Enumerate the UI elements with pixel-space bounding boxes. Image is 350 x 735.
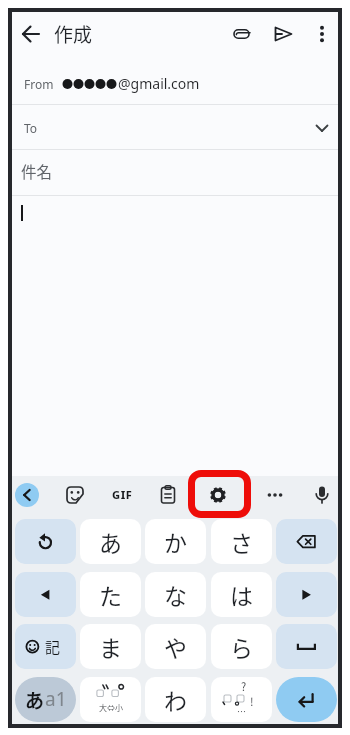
staticText: @gmail.com <box>118 74 200 93</box>
button[interactable]: た <box>80 572 141 617</box>
button[interactable] <box>263 14 303 54</box>
button[interactable]: わ <box>145 677 206 722</box>
button[interactable]: 大⇔小 <box>80 677 141 722</box>
staticText: ? <box>241 678 247 694</box>
button[interactable] <box>302 14 342 54</box>
staticText: 大⇔小 <box>99 702 123 714</box>
staticText: GIF <box>112 487 133 502</box>
button[interactable]: さ <box>211 519 272 564</box>
staticText: わ <box>164 683 187 716</box>
button[interactable]: 記 <box>15 624 76 669</box>
staticText: あ <box>25 686 45 714</box>
button[interactable] <box>11 58 339 104</box>
button[interactable]: ま <box>80 624 141 669</box>
staticText: や <box>164 630 187 663</box>
button[interactable]: な <box>145 572 206 617</box>
button[interactable] <box>15 519 76 564</box>
button[interactable]: や <box>145 624 206 669</box>
button[interactable]: あ <box>80 519 141 564</box>
button[interactable] <box>55 475 95 515</box>
button[interactable] <box>276 677 337 722</box>
button[interactable] <box>276 519 337 564</box>
staticText: あ <box>99 525 122 558</box>
staticText: 記 <box>45 636 61 658</box>
staticText: か <box>164 525 187 558</box>
staticText: 作成 <box>54 20 93 48</box>
button[interactable]: GIF <box>104 481 140 508</box>
button[interactable]: ら <box>211 624 272 669</box>
staticText: 件名 <box>21 160 53 182</box>
button[interactable] <box>11 105 339 150</box>
staticText: ! <box>250 693 254 709</box>
staticText: た <box>99 578 122 611</box>
staticText: From <box>24 76 54 92</box>
staticText: a1 <box>45 686 67 712</box>
button[interactable] <box>11 150 339 195</box>
button[interactable] <box>255 475 295 515</box>
button[interactable] <box>307 113 337 143</box>
button[interactable] <box>276 624 337 669</box>
button[interactable] <box>148 475 188 515</box>
staticText: な <box>164 578 187 611</box>
button[interactable]: ? <box>211 677 272 722</box>
staticText: ま <box>99 630 122 663</box>
staticText: さ <box>230 525 253 558</box>
button[interactable] <box>11 14 51 54</box>
button[interactable] <box>15 483 39 507</box>
button[interactable] <box>302 475 342 515</box>
staticText: ら <box>230 630 253 663</box>
button[interactable]: は <box>211 572 272 617</box>
button[interactable] <box>222 14 262 54</box>
button[interactable] <box>276 572 337 617</box>
staticText: は <box>230 578 253 611</box>
button[interactable]: か <box>145 519 206 564</box>
button[interactable]: あ <box>15 677 76 722</box>
button[interactable] <box>15 572 76 617</box>
button[interactable] <box>198 475 238 515</box>
staticText: To <box>24 120 38 136</box>
staticText: … <box>237 705 247 718</box>
